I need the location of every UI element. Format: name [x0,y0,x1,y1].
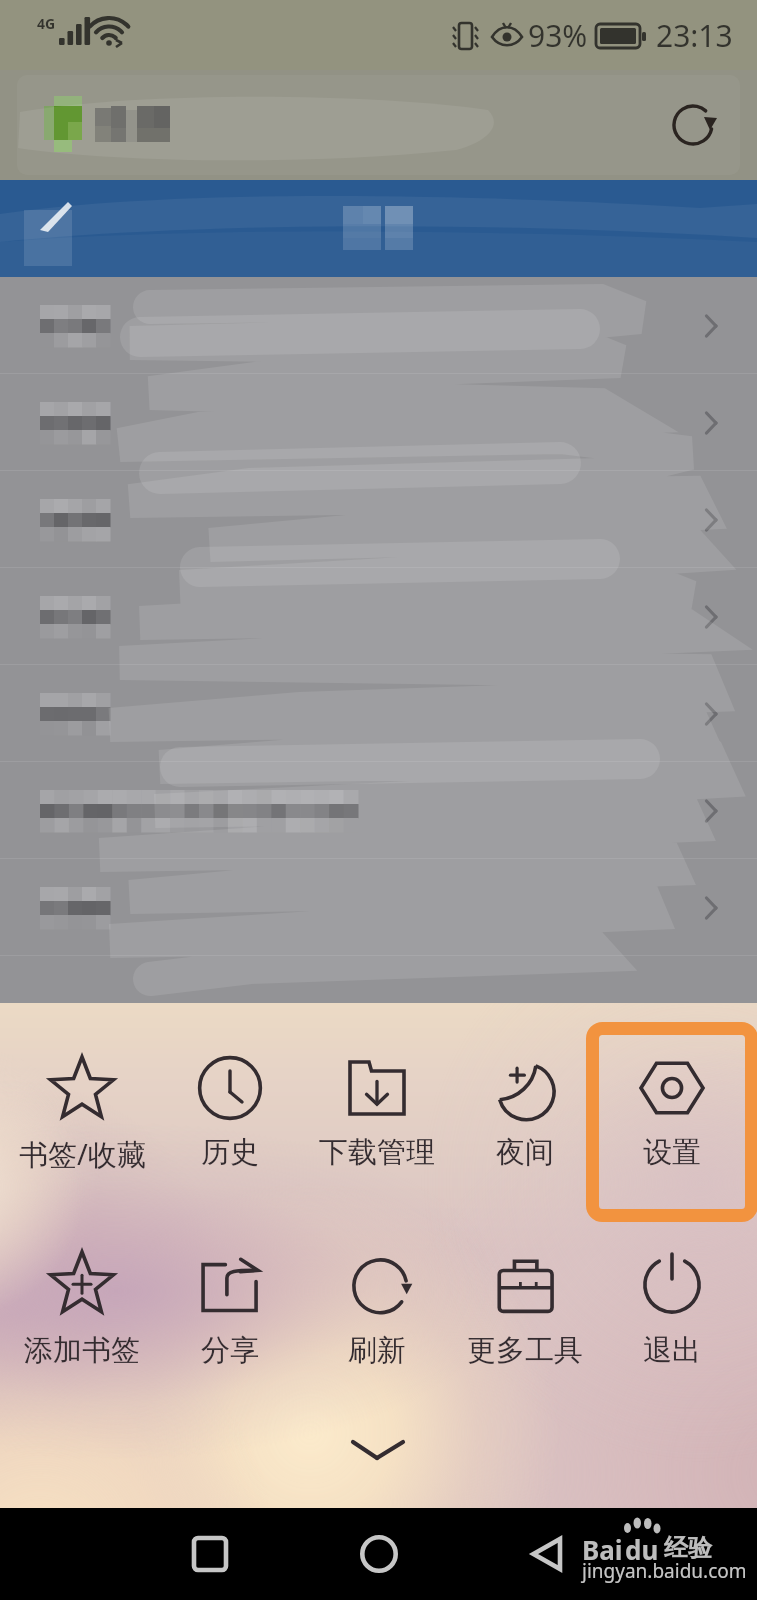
staticText: 23:13 [656,15,733,56]
button[interactable] [0,277,757,374]
button[interactable]: 历史 [157,1036,303,1156]
staticText: 93% [528,15,588,56]
button[interactable] [0,471,757,568]
staticText: 夜间 [496,1134,554,1171]
button[interactable] [0,568,757,665]
button[interactable] [0,665,757,762]
staticText: 书签/收藏 [19,1134,146,1174]
staticText: 4G [37,14,56,33]
button[interactable]: Collapse menu [328,1423,428,1479]
staticText: 下载管理 [319,1134,435,1171]
button[interactable]: 夜间 [452,1036,598,1156]
button[interactable]: 设置 [599,1036,745,1156]
button[interactable]: Refresh [665,97,721,153]
staticText: jingyan.baidu.com [582,1558,747,1584]
button[interactable]: 刷新 [304,1231,450,1351]
button[interactable]: 更多工具 [452,1231,598,1351]
staticText: 分享 [201,1332,259,1369]
staticText: 经验 [664,1533,712,1563]
button[interactable]: Back [515,1522,579,1586]
button[interactable]: Recents [178,1522,242,1586]
staticText: Bai [582,1532,623,1567]
staticText: 添加书签 [24,1332,140,1369]
staticText: 更多工具 [467,1332,583,1369]
button[interactable] [0,859,757,956]
button[interactable] [0,762,757,859]
button[interactable]: 下载管理 [304,1036,450,1156]
staticText: 设置 [643,1134,701,1171]
button[interactable]: 添加书签 [9,1231,155,1351]
button[interactable]: 分享 [157,1231,303,1351]
staticText: 刷新 [348,1332,406,1369]
staticText: 退出 [643,1332,701,1369]
button[interactable] [17,75,740,175]
staticText: du [625,1532,659,1567]
button[interactable]: 退出 [599,1231,745,1351]
button[interactable]: Home [347,1522,411,1586]
button[interactable]: 书签/收藏 [9,1036,155,1156]
staticText: 历史 [201,1134,259,1171]
button[interactable] [0,374,757,471]
